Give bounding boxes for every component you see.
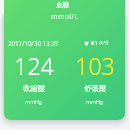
staticText: 血糖 xyxy=(56,1,70,9)
staticText: 81 xyxy=(91,39,98,47)
staticText: 收縮壓 xyxy=(23,84,45,93)
staticText: 舒張壓 xyxy=(84,84,106,93)
button[interactable]: 124 xyxy=(4,50,64,105)
staticText: 124 xyxy=(14,50,54,81)
other: Heart rate xyxy=(84,41,89,46)
staticText: mmol/L xyxy=(51,12,79,22)
staticText: 2017/10/30 13:39 xyxy=(8,39,59,47)
button[interactable]: 103 xyxy=(64,50,125,105)
button[interactable]: 血糖 xyxy=(4,0,125,120)
staticText: 103 xyxy=(75,50,115,81)
staticText: mmHg xyxy=(86,98,104,105)
staticText: mmHg xyxy=(25,98,43,105)
staticText: 次/分 xyxy=(99,40,109,46)
